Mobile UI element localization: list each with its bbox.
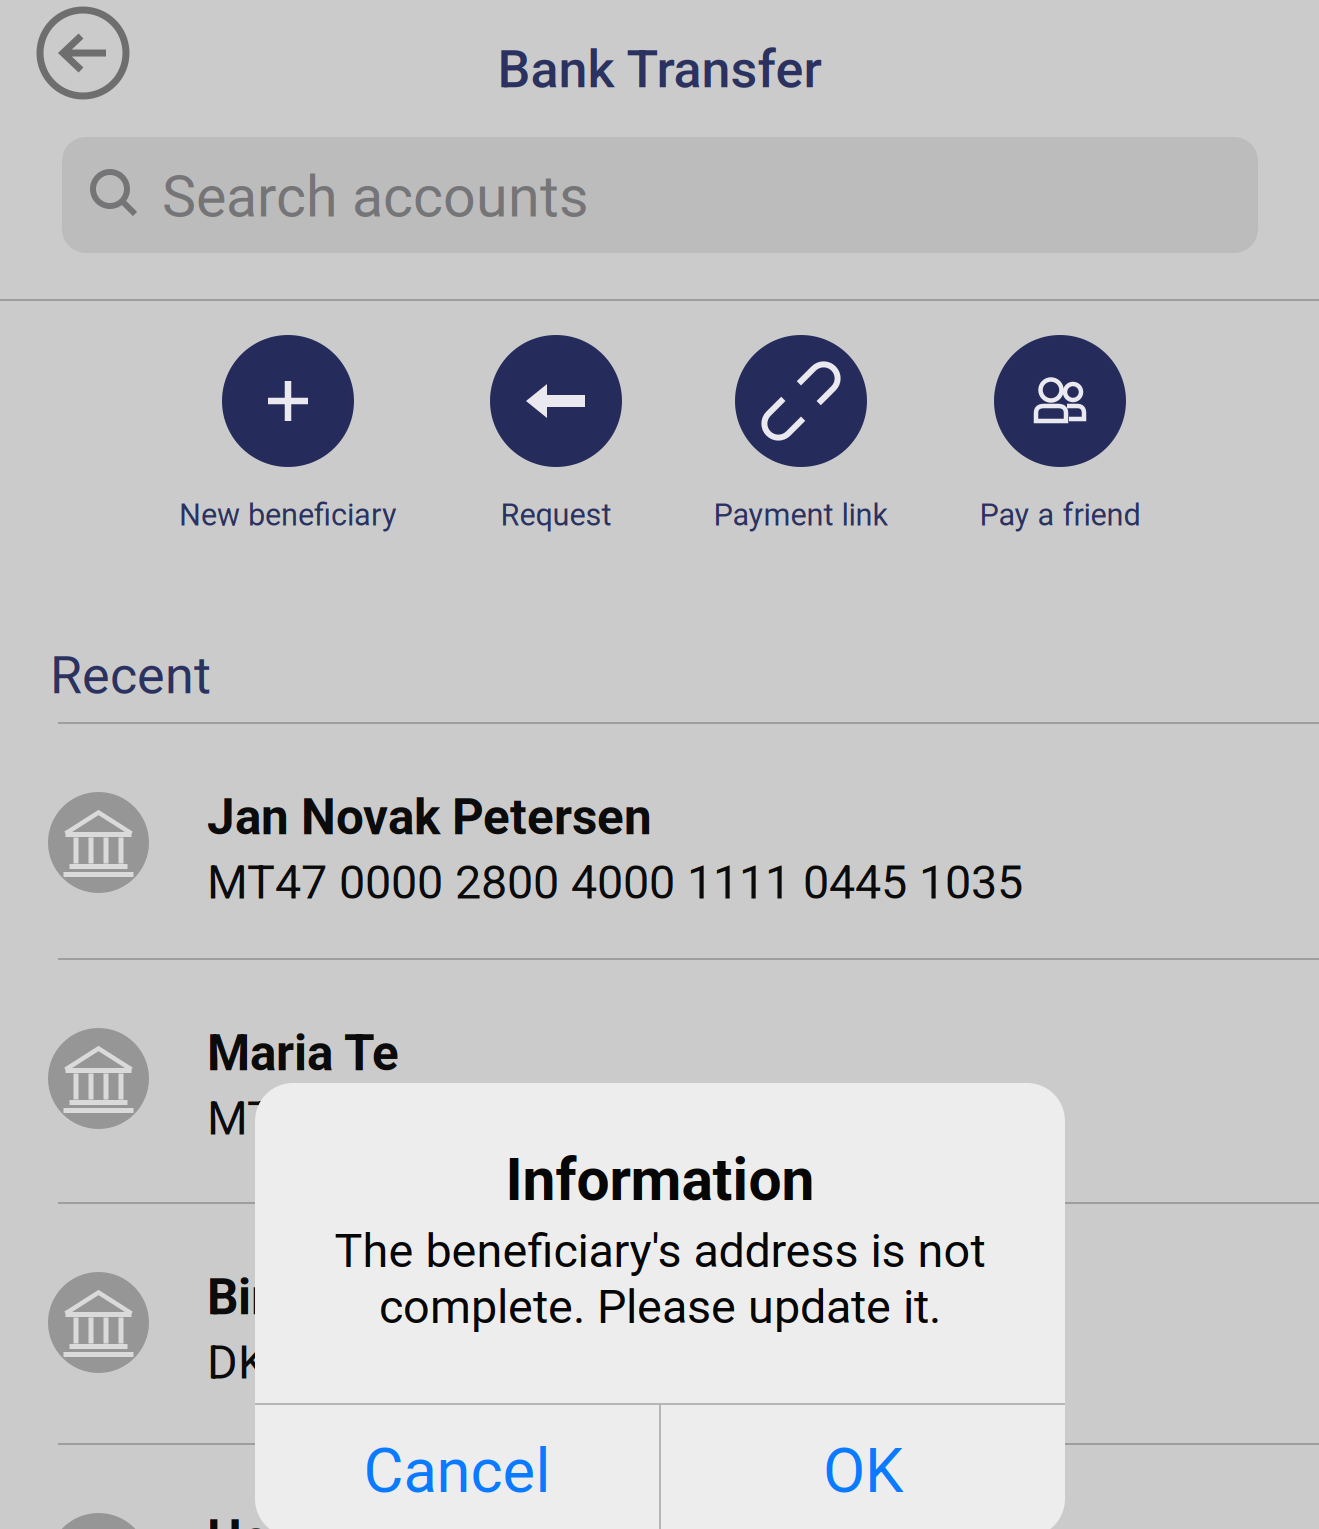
staticText: The beneficiary's address is not: [334, 1224, 985, 1278]
staticText: MT09 8812 5500 2214: [207, 1091, 675, 1146]
staticText: Pay a friend: [979, 497, 1140, 533]
staticText: Birgitte: [207, 1269, 371, 1326]
staticText: Jan Novak Petersen: [207, 789, 652, 846]
button[interactable]: Payment link: [661, 335, 941, 535]
button[interactable]: Back: [36, 6, 130, 100]
staticText: Information: [505, 1146, 814, 1214]
button[interactable]: Pay a friend: [920, 335, 1200, 535]
button[interactable]: Birgitte: [0, 1204, 1319, 1445]
staticText: Request: [500, 497, 611, 533]
staticText: Payment link: [713, 497, 888, 533]
staticText: New beneficiary: [179, 497, 397, 533]
button[interactable]: Request: [416, 335, 696, 535]
staticText: Search accounts: [162, 163, 589, 231]
staticText: complete. Please update it.: [379, 1280, 941, 1334]
staticText: Recent: [50, 645, 211, 706]
staticText: DK50 0040 0440 1162 43: [207, 1335, 731, 1390]
staticText: Maria Te: [207, 1025, 399, 1082]
button[interactable]: Jan Novak Petersen: [0, 724, 1319, 965]
staticText: Bank Transfer: [497, 39, 821, 100]
button[interactable]: New beneficiary: [148, 335, 428, 535]
staticText: OK: [823, 1435, 903, 1507]
staticText: Cancel: [363, 1435, 550, 1507]
button[interactable]: OK: [661, 1405, 1065, 1529]
staticText: MT47 0000 2800 4000 1111 0445 1035: [207, 855, 1023, 910]
staticText: Henrik: [207, 1510, 354, 1529]
button[interactable]: Cancel: [255, 1405, 659, 1529]
button[interactable]: Henrik: [0, 1445, 1319, 1529]
button[interactable]: Maria Te: [0, 960, 1319, 1201]
button[interactable]: Search accounts: [62, 137, 1258, 253]
